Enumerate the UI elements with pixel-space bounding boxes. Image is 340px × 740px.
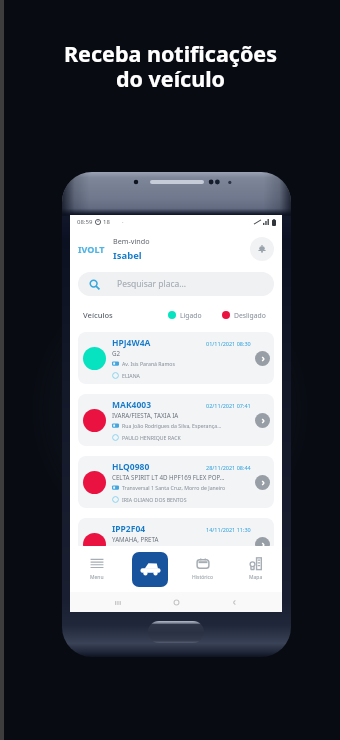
staticText: IPP2F04	[112, 523, 146, 535]
button[interactable]: HPJ4W4A	[78, 332, 274, 384]
staticText: Receba notificações do veículo	[64, 39, 277, 93]
staticText: 18	[103, 218, 110, 226]
button[interactable]: IPP2F04	[78, 518, 274, 570]
staticText: HLQ0980	[112, 461, 150, 473]
staticText: 02/11/2021 07:41	[206, 402, 251, 409]
staticText: 28/11/2021 08:44	[206, 464, 251, 471]
staticText: Bem-vindo	[113, 236, 150, 246]
staticText: Histórico	[192, 574, 214, 581]
button[interactable]: Home	[148, 621, 204, 643]
button[interactable]: Mapa	[229, 557, 282, 581]
button[interactable]: HLQ0980	[78, 456, 274, 508]
staticText: IVOLT	[78, 243, 105, 255]
staticText: IRIA OLIANO DOS BENTOS	[122, 496, 187, 503]
button[interactable]: Notificações	[250, 237, 274, 261]
staticText: Pesquisar placa...	[117, 278, 187, 290]
staticText: MAK4003	[112, 399, 151, 411]
staticText: CELTA SPIRIT LT 4D HPF169 FLEX POP...	[112, 473, 225, 481]
button[interactable]: Recentes	[108, 595, 128, 610]
button[interactable]: Ver detalhes	[255, 351, 270, 366]
button[interactable]: Voltar	[224, 595, 244, 610]
button[interactable]: Ver detalhes	[255, 475, 270, 490]
staticText: Mapa	[249, 574, 263, 581]
staticText: Rua Projetada B, Centro	[122, 546, 181, 553]
button[interactable]: Início	[166, 595, 186, 610]
staticText: PAULO HENRIQUE RACK	[122, 434, 181, 441]
button[interactable]: MAK4003	[78, 394, 274, 446]
staticText: Ligado	[180, 311, 202, 320]
button[interactable]: Menu	[70, 557, 123, 581]
staticText: MARIA DA SILVA	[122, 558, 162, 565]
staticText: ELIANA	[122, 372, 140, 379]
staticText: Av. Isis Paraná Ramos	[122, 360, 175, 367]
staticText: Isabel	[113, 249, 142, 262]
button[interactable]: Ver detalhes	[255, 537, 270, 552]
staticText: 14/11/2021 11:30	[206, 526, 251, 533]
staticText: IVARA/FIESTA, TAXIA IA	[112, 411, 179, 419]
staticText: 01/11/2021 08:30	[206, 340, 251, 347]
staticText: Transversal 1 Santa Cruz, Morro de Janei…	[122, 484, 226, 491]
staticText: ·	[122, 218, 124, 226]
staticText: Veículos	[83, 310, 113, 320]
staticText: Menu	[90, 574, 104, 581]
staticText: HPJ4W4A	[112, 337, 151, 349]
staticText: YAMAHA, PRETA	[112, 535, 159, 543]
button[interactable]: Ver detalhes	[255, 413, 270, 428]
button[interactable]: Carro	[132, 552, 168, 587]
button[interactable]: Histórico	[176, 557, 229, 581]
staticText: 08:59	[77, 218, 93, 226]
staticText: Rua João Rodrigues da Silva, Esperança..…	[122, 422, 222, 429]
button[interactable]: Pesquisar placa...	[78, 272, 274, 296]
staticText: G2	[112, 349, 121, 357]
staticText: Desligado	[234, 311, 266, 320]
